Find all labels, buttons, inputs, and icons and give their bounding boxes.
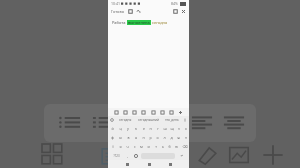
button[interactable]: Add (262, 144, 284, 166)
button[interactable]: Shape (160, 144, 182, 166)
button[interactable]: ь (159, 142, 166, 151)
button[interactable]: Text box (100, 144, 122, 166)
staticText: Работа (112, 20, 126, 25)
staticText: 10:41 (111, 1, 120, 6)
button[interactable]: Numbered list (92, 113, 116, 133)
button[interactable]: л (161, 133, 168, 142)
button[interactable]: Image (228, 144, 250, 166)
button[interactable]: ж (175, 133, 182, 142)
button[interactable]: ч (124, 142, 131, 151)
button[interactable]: ы (116, 133, 124, 142)
staticText: р (149, 135, 152, 140)
button[interactable]: в (124, 133, 132, 142)
button[interactable]: Back (124, 161, 130, 167)
button[interactable]: г (154, 124, 161, 133)
button[interactable]: Toolbar action 4 (141, 110, 146, 115)
button[interactable]: Toolbar action 6 (160, 110, 165, 115)
button[interactable]: это_день (160, 118, 183, 122)
button[interactable]: ю (173, 142, 180, 151)
button[interactable]: ш (161, 124, 168, 133)
button[interactable]: Align center (222, 113, 246, 133)
staticText: сегодняшний (138, 118, 160, 122)
button[interactable]: ⇧ (108, 142, 117, 151)
staticText: Готово (111, 9, 125, 14)
staticText: м (140, 144, 143, 149)
button[interactable]: Close (181, 9, 186, 14)
staticText: д (170, 135, 173, 140)
button[interactable]: Bulleted list (58, 113, 82, 133)
staticText: ф (111, 135, 114, 140)
staticText: т (155, 144, 157, 149)
button[interactable]: у (124, 124, 132, 133)
button[interactable]: а (132, 133, 140, 142)
staticText: в (127, 135, 130, 140)
button[interactable]: Brush (196, 144, 218, 166)
button[interactable]: к (132, 124, 140, 133)
button[interactable] (131, 153, 140, 159)
staticText: п (142, 135, 145, 140)
button[interactable]: э (182, 133, 189, 142)
staticText: х (185, 126, 187, 131)
staticText: и (147, 144, 150, 149)
button[interactable]: з (175, 124, 182, 133)
staticText: ю (175, 144, 178, 149)
staticText: л (163, 135, 166, 140)
button[interactable]: о (154, 133, 161, 142)
button[interactable]: Toolbar action 8 (178, 110, 183, 115)
button[interactable]: Align left (190, 113, 214, 133)
button[interactable]: Save (173, 9, 178, 14)
button[interactable]: я (117, 142, 124, 151)
staticText: ш (163, 126, 167, 131)
button[interactable]: Home (146, 161, 152, 167)
button[interactable]: Copy (128, 9, 133, 14)
staticText: ?123 (113, 154, 120, 158)
button[interactable]: е (140, 124, 147, 133)
button[interactable]: Toolbar action 7 (169, 110, 174, 115)
staticText: н (149, 126, 152, 131)
button[interactable]: х (182, 124, 189, 133)
button[interactable]: н (147, 124, 154, 133)
staticText: сегодня (152, 20, 168, 25)
button[interactable]: м (138, 142, 145, 151)
button[interactable]: т (152, 142, 159, 151)
staticText: я (119, 144, 122, 149)
staticText: ч (126, 144, 129, 149)
button[interactable]: Undo (136, 9, 141, 14)
button[interactable]: Toolbar action 2 (123, 110, 128, 115)
button[interactable]: б (166, 142, 173, 151)
staticText: это_день (165, 118, 179, 122)
staticText: выполнена (128, 20, 150, 25)
button[interactable]: сегодня (114, 118, 137, 122)
button[interactable]: , (123, 151, 131, 160)
button[interactable]: Toolbar action 1 (114, 110, 119, 115)
button[interactable]: ↵ (176, 151, 188, 160)
button[interactable]: ц (116, 124, 124, 133)
staticText: э (185, 135, 187, 140)
button[interactable]: д (168, 133, 175, 142)
button[interactable]: р (147, 133, 154, 142)
staticText: 84% (171, 1, 178, 6)
button[interactable]: ⌫ (180, 142, 189, 151)
button[interactable]: Grid (42, 144, 64, 166)
button[interactable]: ?123 (109, 151, 123, 160)
staticText: ы (119, 135, 122, 140)
staticText: ь (162, 144, 164, 149)
staticText: ⌫ (182, 145, 188, 149)
button[interactable]: Toolbar action 5 (151, 110, 156, 115)
button[interactable]: Recents (167, 161, 173, 167)
staticText: к (135, 126, 137, 131)
button[interactable]: п (140, 133, 147, 142)
staticText: е (143, 126, 145, 131)
button[interactable]: й (108, 124, 116, 133)
staticText: з (178, 126, 180, 131)
button[interactable]: ф (108, 133, 116, 142)
button[interactable]: Toolbar action 3 (132, 110, 137, 115)
button[interactable]: щ (168, 124, 175, 133)
staticText: ж (177, 135, 180, 140)
staticText: а (135, 135, 137, 140)
staticText: б (168, 144, 171, 149)
button[interactable]: и (145, 142, 152, 151)
button[interactable]: сегодняшний (137, 118, 160, 122)
button[interactable]: с (131, 142, 138, 151)
